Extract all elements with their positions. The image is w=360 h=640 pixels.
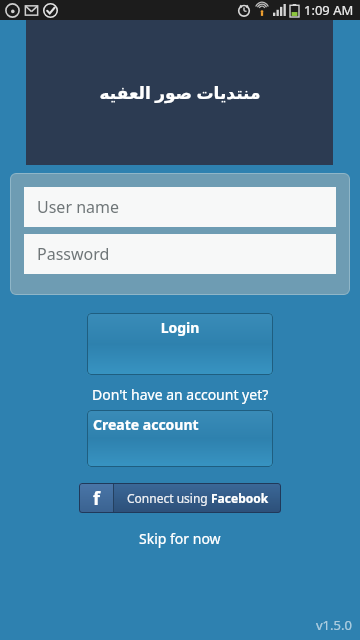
button[interactable]: Login (87, 313, 273, 375)
staticText: Skip for now (139, 529, 221, 548)
button[interactable]: Don't have an account yet? (86, 383, 275, 406)
button[interactable]: Skip for now (131, 527, 229, 550)
staticText: Facebook (211, 490, 269, 506)
staticText: Create account (93, 415, 199, 434)
staticText: Login (93, 318, 267, 337)
button[interactable]: Create account (87, 410, 273, 467)
staticText: منتديات صور العفيه (99, 81, 261, 104)
button[interactable]: User name (24, 187, 336, 227)
staticText: User name (37, 196, 120, 218)
staticText: f (93, 486, 100, 511)
staticText: Password (37, 243, 110, 265)
staticText: Don't have an account yet? (92, 385, 269, 404)
button[interactable]: Password (24, 234, 336, 274)
staticText: Connect using (127, 490, 211, 506)
staticText: v1.5.0 (316, 616, 352, 634)
button[interactable]: f (79, 483, 281, 513)
staticText: 1:09 AM (304, 1, 354, 19)
